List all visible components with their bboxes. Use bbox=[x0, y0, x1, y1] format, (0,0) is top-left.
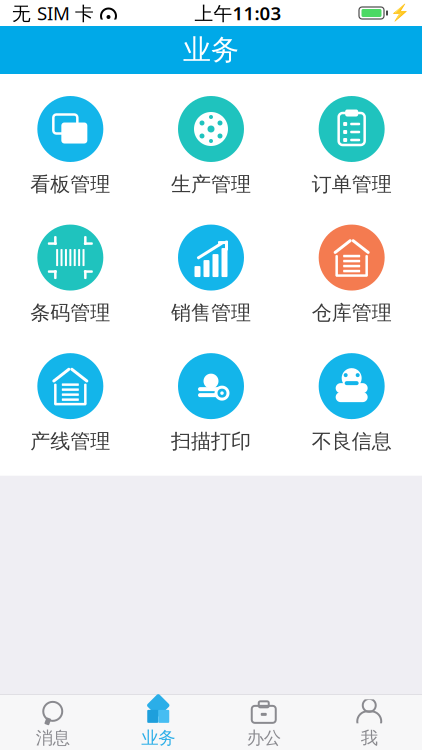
button[interactable]: 办公 bbox=[211, 692, 316, 750]
staticText: 无 SIM 卡 bbox=[12, 1, 94, 25]
staticText: 业务 bbox=[141, 727, 175, 749]
button[interactable]: 不良信息 bbox=[281, 349, 422, 458]
button[interactable]: 看板管理 bbox=[0, 92, 141, 201]
button[interactable]: 订单管理 bbox=[281, 92, 422, 201]
staticText: 业务 bbox=[183, 33, 239, 67]
staticText: ⚡ bbox=[390, 4, 410, 22]
staticText: 看板管理 bbox=[30, 172, 110, 197]
staticText: 订单管理 bbox=[312, 172, 392, 197]
button[interactable]: 我 bbox=[316, 692, 422, 750]
staticText: 扫描打印 bbox=[171, 429, 251, 454]
button[interactable]: 生产管理 bbox=[141, 92, 281, 201]
staticText: 消息 bbox=[36, 727, 70, 749]
button[interactable]: 销售管理 bbox=[141, 221, 281, 329]
staticText: 我 bbox=[361, 727, 378, 749]
staticText: 条码管理 bbox=[30, 301, 110, 325]
staticText: 办公 bbox=[247, 727, 281, 749]
staticText: 生产管理 bbox=[171, 172, 251, 197]
staticText: 不良信息 bbox=[312, 429, 392, 454]
button[interactable]: 仓库管理 bbox=[281, 221, 422, 329]
button[interactable]: 业务 bbox=[105, 692, 211, 750]
staticText: 仓库管理 bbox=[312, 301, 392, 325]
staticText: 上午11:03 bbox=[194, 1, 281, 25]
button[interactable]: 产线管理 bbox=[0, 349, 141, 458]
button[interactable]: 消息 bbox=[0, 692, 105, 750]
button[interactable]: 扫描打印 bbox=[141, 349, 281, 458]
staticText: 销售管理 bbox=[171, 301, 251, 325]
button[interactable]: 条码管理 bbox=[0, 221, 141, 329]
staticText: 产线管理 bbox=[30, 429, 110, 454]
